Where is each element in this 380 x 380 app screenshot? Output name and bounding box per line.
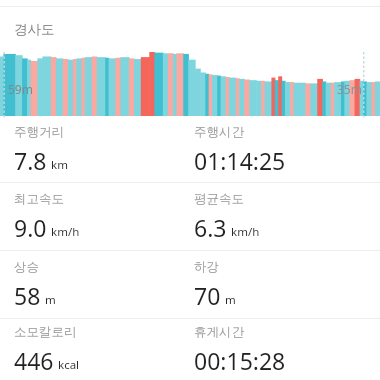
staticText: 58: [14, 280, 41, 311]
other: Elevation gradient chart: [0, 52, 380, 116]
staticText: 휴게시간: [194, 324, 244, 340]
staticText: 70: [194, 280, 221, 311]
staticText: m: [45, 292, 56, 308]
button[interactable]: 경사도: [0, 7, 380, 52]
staticText: 7.8: [14, 145, 47, 176]
staticText: 9.0: [14, 212, 47, 243]
staticText: 평균속도: [194, 191, 244, 207]
staticText: 59m: [8, 81, 33, 97]
staticText: km: [51, 157, 68, 173]
staticText: km/h: [51, 224, 80, 240]
staticText: 01:14:25: [194, 145, 286, 176]
button[interactable]: 상승: [0, 251, 380, 318]
staticText: 35m: [337, 81, 362, 97]
staticText: 경사도: [14, 21, 55, 38]
button[interactable]: 최고속도: [0, 183, 380, 250]
staticText: 최고속도: [14, 191, 64, 207]
button[interactable]: 소모칼로리: [0, 319, 380, 380]
staticText: 소모칼로리: [14, 324, 77, 340]
staticText: 6.3: [194, 212, 227, 243]
staticText: 하강: [194, 259, 219, 275]
staticText: 주행거리: [14, 124, 64, 140]
staticText: 주행시간: [194, 124, 244, 140]
staticText: 상승: [14, 259, 39, 275]
button[interactable]: 주행거리: [0, 118, 380, 182]
staticText: m: [225, 292, 236, 308]
staticText: 446: [14, 345, 54, 376]
staticText: km/h: [231, 224, 260, 240]
staticText: 00:15:28: [194, 345, 286, 376]
staticText: kcal: [58, 357, 80, 373]
